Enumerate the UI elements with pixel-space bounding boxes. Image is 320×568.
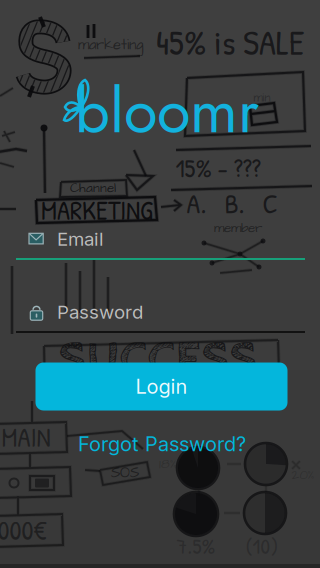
staticText: 7.5%	[176, 532, 215, 560]
staticText: Channel	[70, 179, 116, 197]
staticText: min	[253, 90, 270, 106]
staticText: 20%	[291, 466, 314, 484]
staticText: A. B. C	[186, 184, 277, 222]
staticText: (10)	[245, 532, 278, 560]
staticText: marketing	[78, 35, 144, 55]
staticText: Login	[135, 374, 187, 399]
staticText: SUCCESS	[58, 331, 257, 389]
button[interactable]: Login	[35, 362, 287, 410]
staticText: 18%	[159, 455, 177, 473]
staticText: Forgot Password?	[78, 432, 246, 456]
staticText: member	[214, 219, 262, 237]
staticText: bloomr	[75, 67, 259, 155]
staticText: SOS	[111, 463, 139, 483]
staticText: 45% is SALE	[156, 18, 304, 65]
staticText: MARKETING	[41, 192, 153, 228]
staticText: 15% - ???	[175, 151, 260, 185]
staticText: Email	[57, 228, 104, 250]
staticText: Password	[57, 301, 143, 323]
staticText: MAIN	[1, 419, 50, 455]
button[interactable]: Forgot Password?	[72, 431, 252, 457]
staticText: 000€	[0, 512, 46, 548]
